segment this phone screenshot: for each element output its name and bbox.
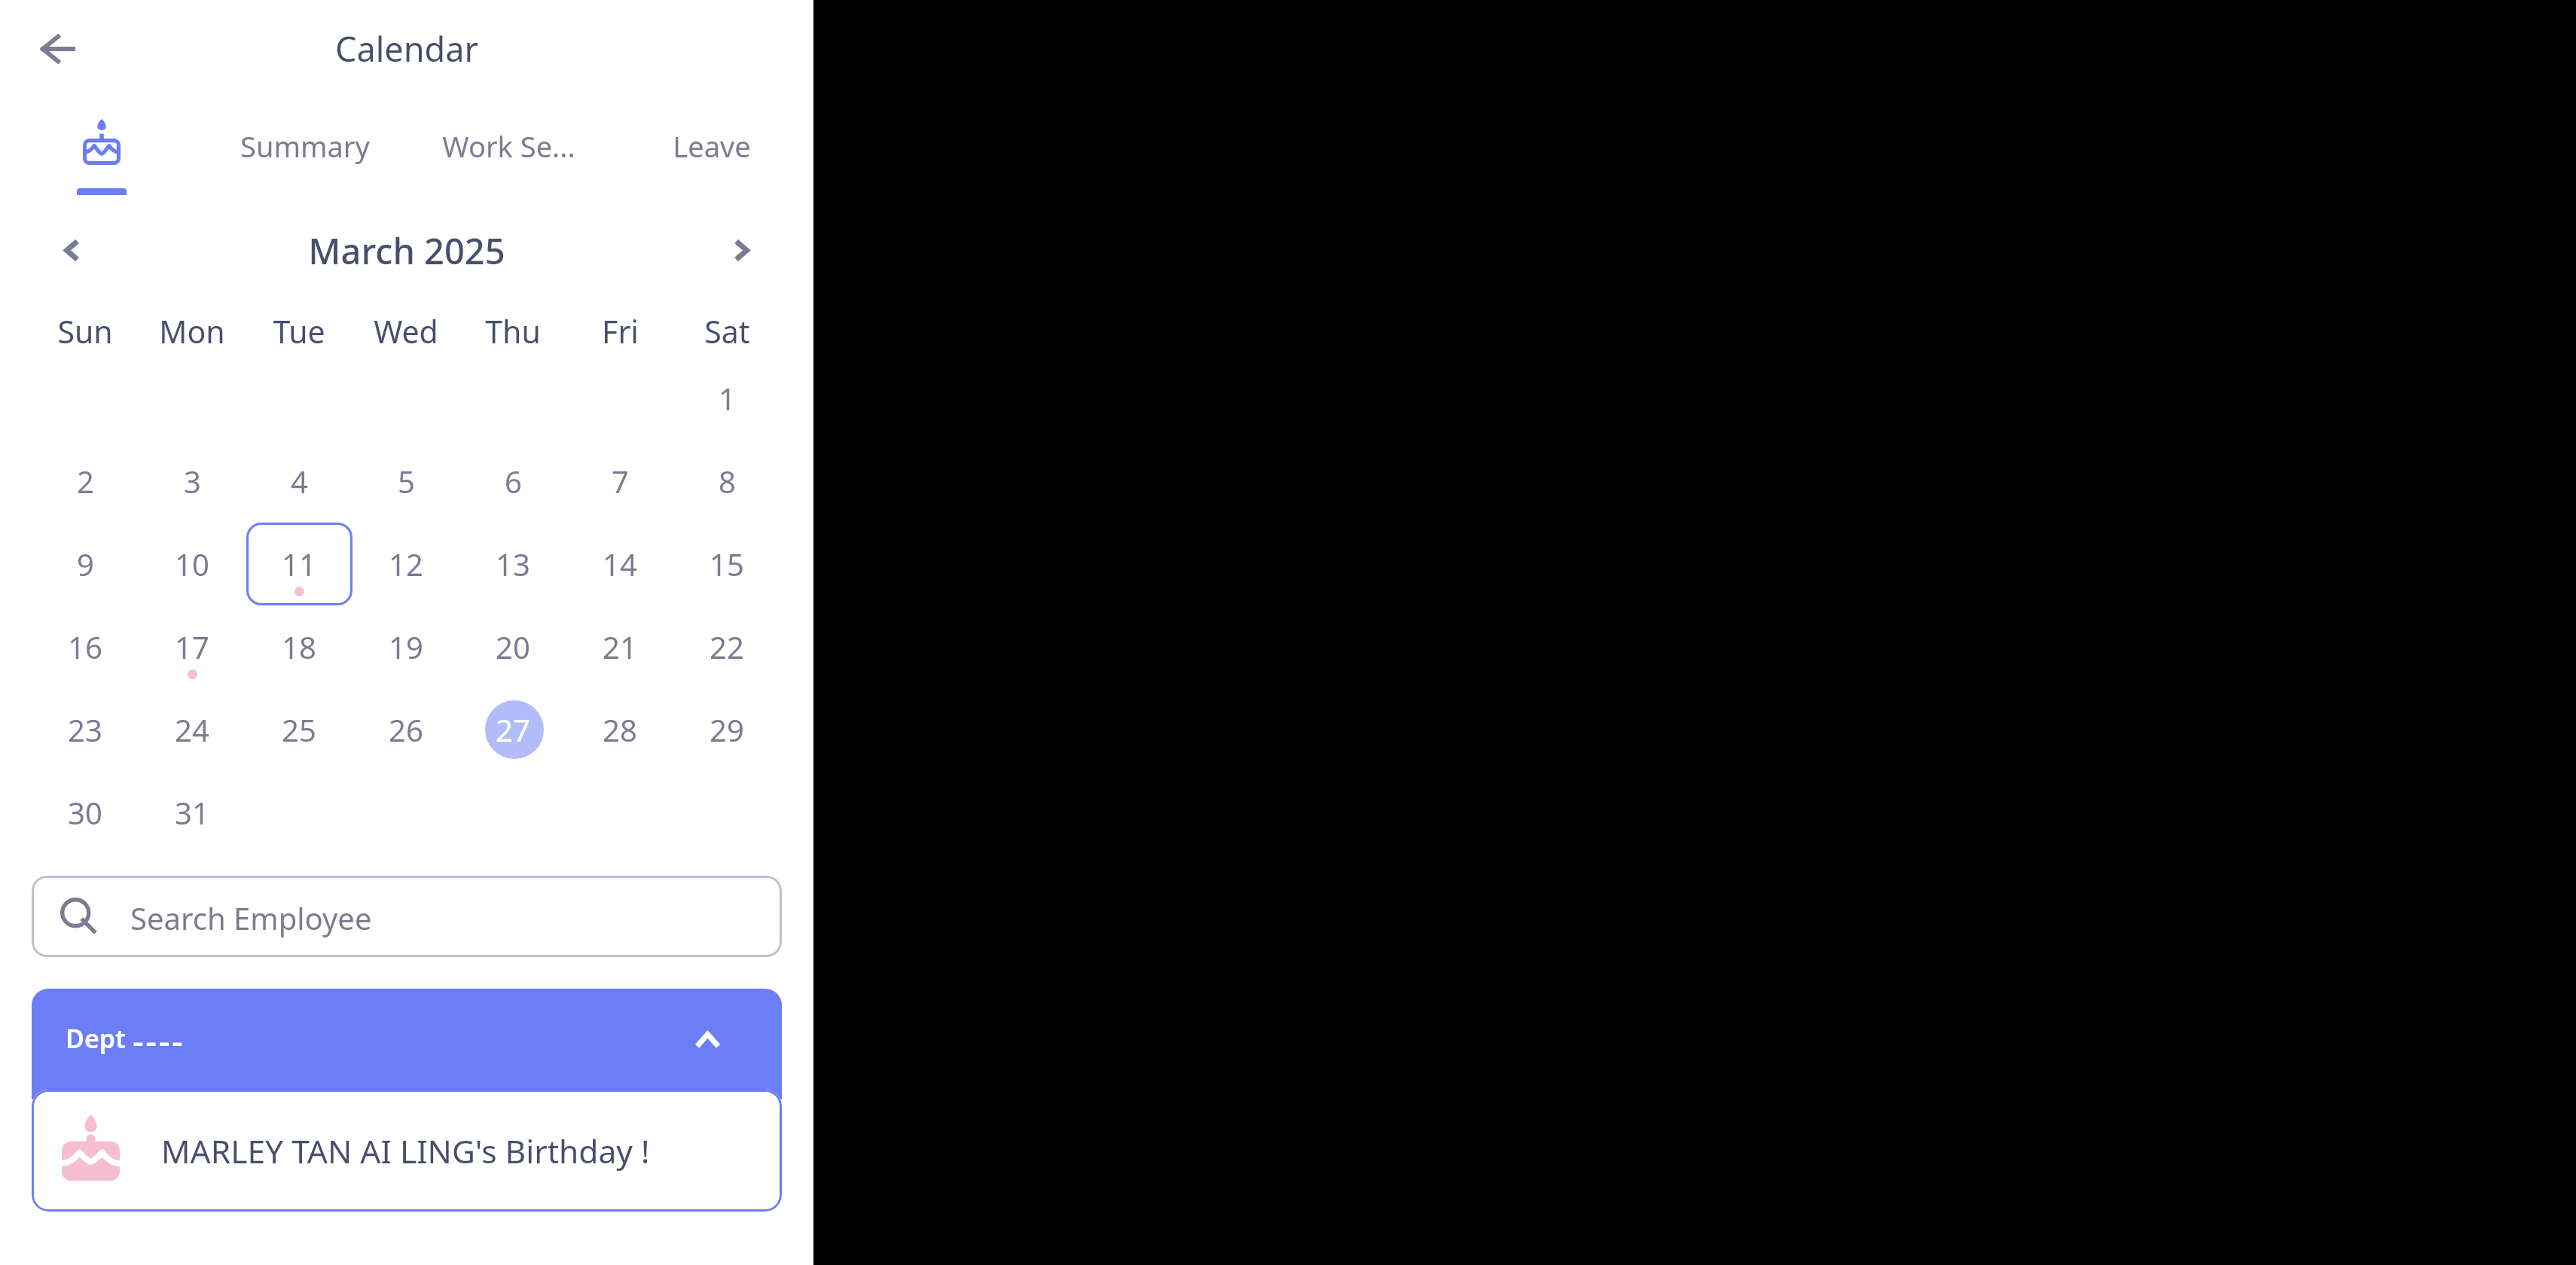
- staticText: Mon: [159, 310, 225, 346]
- staticText: Calendar: [335, 26, 478, 72]
- button[interactable]: 15: [673, 523, 780, 605]
- button[interactable]: 19: [353, 605, 459, 688]
- button[interactable]: 5: [353, 440, 459, 523]
- staticText: Sat: [704, 310, 750, 346]
- staticText: Thu: [485, 310, 541, 346]
- button[interactable]: 3: [139, 440, 246, 523]
- button[interactable]: 11: [246, 523, 353, 605]
- button[interactable]: 17: [139, 605, 246, 688]
- staticText: 4: [291, 461, 308, 501]
- other: Collapse department list: [685, 1017, 730, 1062]
- staticText: 12: [389, 544, 423, 584]
- staticText: 14: [603, 544, 637, 584]
- staticText: March 2025: [308, 227, 505, 275]
- staticText: Search Employee: [130, 898, 372, 938]
- staticText: 21: [603, 626, 637, 667]
- staticText: 27: [496, 709, 530, 750]
- button[interactable]: 10: [139, 523, 246, 605]
- button[interactable]: Previous month: [37, 215, 106, 285]
- staticText: 31: [175, 792, 209, 833]
- staticText: 7: [612, 461, 629, 501]
- staticText: Fri: [602, 310, 639, 346]
- staticText: 29: [710, 709, 744, 750]
- staticText: ----: [133, 1017, 185, 1064]
- staticText: 1: [719, 378, 736, 419]
- button[interactable]: 25: [246, 688, 353, 771]
- button[interactable]: MARLEY TAN AI LING's Birthday !: [32, 1090, 782, 1212]
- staticText: Summary: [240, 126, 370, 166]
- button[interactable]: 20: [459, 605, 566, 688]
- staticText: 25: [282, 709, 316, 750]
- button[interactable]: 24: [139, 688, 246, 771]
- button[interactable]: 4: [246, 440, 353, 523]
- button[interactable]: 28: [566, 688, 673, 771]
- staticText: 10: [175, 544, 209, 584]
- button[interactable]: Back: [22, 14, 91, 84]
- staticText: 13: [496, 544, 530, 584]
- staticText: 30: [68, 792, 102, 833]
- staticText: 18: [282, 626, 316, 667]
- button[interactable]: 22: [673, 605, 780, 688]
- button[interactable]: 2: [32, 440, 139, 523]
- staticText: 11: [282, 544, 316, 584]
- staticText: 15: [710, 544, 744, 584]
- button[interactable]: 7: [566, 440, 673, 523]
- button[interactable]: Next month: [707, 215, 776, 285]
- button[interactable]: 26: [353, 688, 459, 771]
- staticText: 9: [77, 544, 94, 584]
- button[interactable]: 8: [673, 440, 780, 523]
- staticText: 20: [496, 626, 530, 667]
- button[interactable]: 31: [139, 771, 246, 854]
- staticText: 24: [175, 709, 209, 750]
- staticText: 3: [184, 461, 201, 501]
- button[interactable]: 23: [32, 688, 139, 771]
- staticText: 17: [175, 626, 209, 667]
- button[interactable]: 29: [673, 688, 780, 771]
- button[interactable]: Birthdays: [0, 96, 203, 202]
- button[interactable]: 6: [459, 440, 566, 523]
- button[interactable]: 18: [246, 605, 353, 688]
- button[interactable]: 13: [459, 523, 566, 605]
- staticText: Work Se...: [442, 126, 575, 166]
- staticText: 28: [603, 709, 637, 750]
- button[interactable]: 16: [32, 605, 139, 688]
- button[interactable]: 14: [566, 523, 673, 605]
- button[interactable]: Search Employee: [32, 876, 782, 957]
- staticText: 22: [710, 626, 744, 667]
- button[interactable]: 1: [673, 357, 780, 440]
- staticText: 23: [68, 709, 102, 750]
- button[interactable]: 12: [353, 523, 459, 605]
- staticText: Sun: [57, 310, 113, 346]
- staticText: Tue: [273, 310, 325, 346]
- staticText: 19: [389, 626, 423, 667]
- button[interactable]: Dept: [32, 989, 782, 1099]
- staticText: Leave: [673, 126, 751, 166]
- staticText: 6: [505, 461, 522, 501]
- staticText: 5: [398, 461, 415, 501]
- staticText: 8: [719, 461, 736, 501]
- staticText: Wed: [374, 310, 438, 346]
- button[interactable]: Summary: [203, 96, 407, 202]
- staticText: MARLEY TAN AI LING's Birthday !: [161, 1129, 650, 1173]
- button[interactable]: 30: [32, 771, 139, 854]
- button[interactable]: Work Se...: [407, 96, 610, 202]
- button[interactable]: 27: [459, 688, 566, 771]
- staticText: Dept: [66, 1021, 126, 1056]
- staticText: 16: [68, 626, 102, 667]
- button[interactable]: Leave: [610, 96, 813, 202]
- button[interactable]: 9: [32, 523, 139, 605]
- staticText: 26: [389, 709, 423, 750]
- staticText: 2: [77, 461, 94, 501]
- button[interactable]: 21: [566, 605, 673, 688]
